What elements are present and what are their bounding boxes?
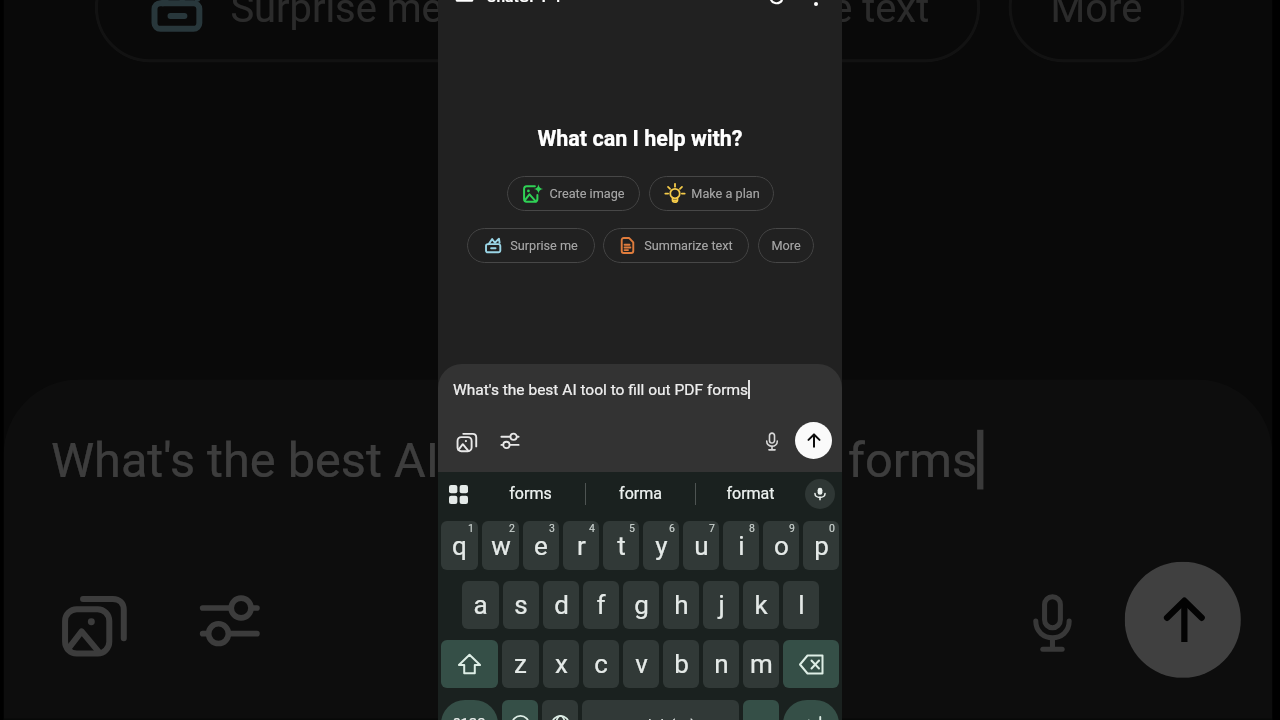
staticText: i: [738, 531, 745, 561]
button[interactable]: w: [482, 521, 519, 570]
staticText: u: [694, 531, 709, 561]
button[interactable]: Dictate: [756, 425, 788, 457]
button[interactable]: k: [743, 581, 779, 629]
button[interactable]: d: [543, 581, 579, 629]
button[interactable]: Tools: [176, 568, 280, 672]
button[interactable]: q: [441, 521, 478, 570]
staticText: f: [596, 590, 606, 620]
button[interactable]: i: [723, 521, 759, 570]
button[interactable]: a: [462, 581, 499, 629]
button[interactable]: Dictate: [1002, 571, 1103, 672]
staticText: g: [634, 590, 649, 620]
button[interactable]: Clipboard: [441, 477, 475, 511]
staticText: format: [726, 484, 775, 503]
staticText: 7: [709, 522, 715, 534]
button[interactable]: l: [783, 581, 819, 629]
button[interactable]: Create image: [507, 176, 640, 211]
staticText: l: [798, 590, 805, 620]
button[interactable]: format: [696, 472, 805, 515]
button[interactable]: .: [743, 700, 779, 720]
button[interactable]: y: [643, 521, 679, 570]
button[interactable]: o: [763, 521, 799, 570]
button[interactable]: ?123: [441, 700, 498, 720]
staticText: Surprise me: [510, 238, 578, 253]
button[interactable]: n: [703, 640, 739, 688]
button[interactable]: Make a plan: [649, 176, 774, 211]
button[interactable]: format: [814, 719, 1156, 720]
button[interactable]: [502, 700, 538, 720]
button[interactable]: e: [523, 521, 559, 570]
staticText: x: [555, 649, 568, 679]
staticText: 2: [509, 522, 515, 534]
button[interactable]: Attach image: [450, 425, 483, 458]
button[interactable]: s: [503, 581, 539, 629]
staticText: What can I help with?: [537, 126, 743, 151]
staticText: d: [554, 590, 569, 620]
staticText: 0: [829, 522, 835, 534]
staticText: r: [577, 531, 586, 561]
button[interactable]: v: [623, 640, 659, 688]
button[interactable]: Send: [795, 422, 832, 459]
staticText: y: [655, 531, 668, 561]
staticText: v: [635, 649, 648, 679]
button[interactable]: t: [603, 521, 639, 570]
staticText: k: [754, 590, 768, 620]
button[interactable]: English (US): [582, 700, 739, 720]
button[interactable]: c: [583, 640, 619, 688]
staticText: h: [674, 590, 689, 620]
button[interactable]: p: [803, 521, 839, 570]
button[interactable]: b: [663, 640, 699, 688]
staticText: b: [674, 649, 689, 679]
button[interactable]: Menu: [451, 0, 477, 10]
staticText: ChatGPT 4: [486, 0, 561, 6]
button[interactable]: x: [543, 640, 579, 688]
button[interactable]: j: [703, 581, 739, 629]
button[interactable]: [542, 700, 578, 720]
button[interactable]: h: [663, 581, 699, 629]
staticText: 8: [749, 522, 755, 534]
button[interactable]: More: [1008, 0, 1184, 62]
button[interactable]: Summarize text: [603, 228, 749, 263]
staticText: Surprise me: [230, 0, 443, 31]
button[interactable]: Surprise me: [467, 228, 595, 263]
staticText: m: [750, 649, 773, 679]
staticText: 5: [629, 522, 635, 534]
staticText: What's the best AI tool to fill out PDF …: [51, 433, 977, 489]
staticText: e: [534, 531, 548, 561]
button[interactable]: Attach image: [41, 571, 145, 675]
staticText: 4: [589, 522, 595, 534]
staticText: 1: [468, 522, 474, 534]
staticText: forms: [509, 484, 552, 503]
staticText: 6: [669, 522, 675, 534]
button[interactable]: forma: [468, 719, 811, 720]
staticText: English (US): [627, 717, 695, 720]
button[interactable]: New chat: [764, 0, 790, 10]
button[interactable]: f: [583, 581, 619, 629]
button[interactable]: r: [563, 521, 599, 570]
button[interactable]: m: [743, 640, 779, 688]
button[interactable]: u: [683, 521, 719, 570]
staticText: forma: [619, 484, 662, 503]
button[interactable]: Summarize text: [522, 0, 980, 62]
button[interactable]: Send: [1125, 562, 1241, 678]
staticText: More: [1049, 0, 1143, 31]
button[interactable]: [783, 640, 839, 688]
staticText: c: [594, 649, 608, 679]
button[interactable]: forms: [475, 472, 585, 515]
button[interactable]: g: [623, 581, 659, 629]
button[interactable]: Voice input: [805, 479, 835, 509]
staticText: ?123: [453, 715, 486, 720]
button[interactable]: forma: [586, 472, 695, 515]
button[interactable]: [441, 640, 498, 688]
staticText: Make a plan: [691, 186, 760, 201]
button[interactable]: Surprise me: [95, 0, 497, 62]
button[interactable]: [783, 700, 839, 720]
button[interactable]: More options: [803, 0, 829, 10]
staticText: s: [514, 590, 528, 620]
button[interactable]: forms: [120, 719, 465, 720]
button[interactable]: z: [502, 640, 539, 688]
button[interactable]: Tools: [493, 424, 526, 457]
button[interactable]: More: [758, 228, 814, 263]
staticText: j: [718, 590, 725, 620]
